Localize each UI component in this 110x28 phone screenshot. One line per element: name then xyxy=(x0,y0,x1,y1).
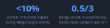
staticText: <10% xyxy=(16,2,39,14)
staticText: during manager-digest conflicts xyxy=(5,21,49,24)
staticText: controls model Default 0 and 10 s xyxy=(58,21,106,24)
staticText: Less than 10% of time elapsed xyxy=(6,16,48,19)
button[interactable]: 0.5/3 xyxy=(55,0,110,28)
staticText: 0.5/3 xyxy=(71,2,93,14)
staticText: Average volume in a low-filtering xyxy=(59,16,106,19)
button[interactable]: <10% xyxy=(0,0,55,28)
